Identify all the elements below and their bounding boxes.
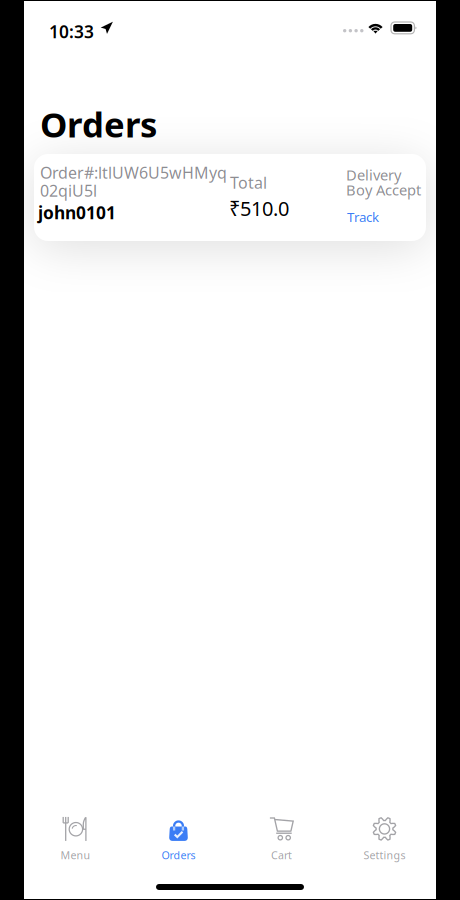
staticText: Orders (40, 101, 157, 147)
staticText: ₹510.0 (229, 195, 289, 222)
staticText: Total (230, 172, 267, 193)
button[interactable]: Cart (230, 812, 333, 866)
staticText: Settings (363, 848, 405, 862)
button[interactable]: Settings (333, 812, 436, 866)
button[interactable]: Menu (24, 812, 127, 866)
staticText: 02qiU5l (40, 180, 97, 201)
staticText: Orders (161, 848, 195, 862)
staticText: 10:33 (49, 20, 94, 43)
staticText: Boy Accept (346, 180, 421, 199)
button[interactable]: Order#:ltlUW6U5wHMyq (34, 154, 426, 241)
staticText: Order#:ltlUW6U5wHMyq (40, 162, 227, 183)
staticText: Menu (60, 848, 90, 862)
button[interactable]: Orders (127, 812, 230, 866)
staticText: Cart (271, 848, 292, 862)
staticText: Delivery (346, 165, 401, 184)
staticText: Track (347, 208, 379, 226)
staticText: john0101 (38, 201, 116, 224)
